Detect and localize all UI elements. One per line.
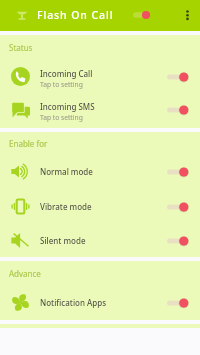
staticText: Status [9, 42, 33, 53]
button[interactable]: More options [180, 5, 196, 26]
staticText: Incoming Call [40, 68, 93, 79]
button[interactable]: Vibrate mode [0, 189, 200, 224]
staticText: Silent mode [40, 235, 165, 246]
staticText: Tap to setting [40, 80, 83, 89]
button[interactable]: Incoming Call [0, 60, 200, 93]
button[interactable]: Toggle [165, 294, 187, 312]
staticText: Vibrate mode [40, 201, 165, 212]
staticText: Advance [9, 268, 41, 279]
button[interactable]: Toggle [165, 163, 187, 181]
button[interactable]: Notification Apps [0, 285, 200, 320]
staticText: Normal mode [40, 166, 165, 177]
button[interactable]: Incoming SMS [0, 93, 200, 126]
button[interactable]: Toggle [165, 232, 187, 250]
button[interactable]: Toggle [165, 198, 187, 216]
staticText: Enable for [9, 138, 48, 149]
staticText: Incoming SMS [40, 101, 95, 112]
button[interactable]: Toggle [165, 101, 187, 119]
staticText: Flash On Call [37, 8, 114, 22]
button[interactable]: Silent mode [0, 223, 200, 258]
button[interactable]: Enable flash [128, 5, 154, 25]
staticText: Notification Apps [40, 297, 165, 308]
button[interactable]: Normal mode [0, 154, 200, 189]
staticText: Tap to setting [40, 113, 83, 122]
button[interactable]: Toggle [165, 68, 187, 86]
